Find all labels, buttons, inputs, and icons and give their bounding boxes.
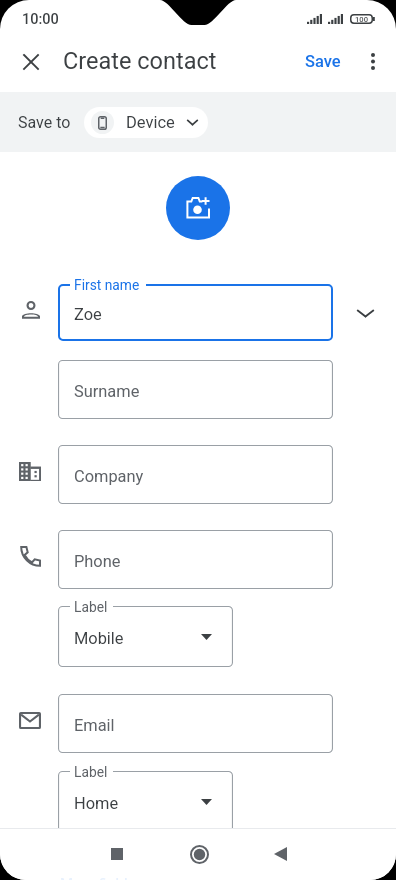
staticText: 100 bbox=[355, 15, 368, 24]
staticText: Mobile bbox=[74, 629, 124, 648]
staticText: Create contact bbox=[63, 47, 217, 75]
button[interactable]: Add photo bbox=[166, 176, 230, 240]
staticText: Email bbox=[74, 716, 115, 735]
button[interactable]: First name bbox=[58, 284, 333, 341]
staticText: Label bbox=[74, 764, 108, 780]
button[interactable]: Device bbox=[84, 107, 208, 138]
staticText: Save to bbox=[18, 113, 71, 132]
staticText: First name bbox=[74, 277, 140, 293]
button[interactable]: Surname bbox=[58, 360, 333, 419]
staticText: Zoe bbox=[74, 305, 102, 324]
button[interactable]: Back bbox=[256, 830, 304, 878]
staticText: Home bbox=[74, 794, 119, 813]
button[interactable]: Expand name fields bbox=[345, 293, 385, 333]
staticText: Surname bbox=[74, 382, 140, 401]
button[interactable]: Email bbox=[58, 694, 333, 753]
staticText: Phone bbox=[74, 552, 121, 571]
staticText: 10:00 bbox=[22, 11, 59, 28]
button[interactable]: More options bbox=[352, 41, 393, 82]
button[interactable]: Company bbox=[58, 445, 333, 504]
staticText: Label bbox=[74, 599, 108, 615]
button[interactable]: Label bbox=[58, 606, 233, 667]
button[interactable]: Label bbox=[58, 771, 233, 832]
staticText: More fields bbox=[60, 875, 136, 880]
button[interactable]: Home bbox=[175, 830, 223, 878]
staticText: Device bbox=[126, 113, 175, 132]
staticText: Save bbox=[305, 52, 341, 71]
button[interactable]: Phone bbox=[58, 530, 333, 589]
button[interactable]: Close bbox=[10, 41, 51, 82]
staticText: Company bbox=[74, 467, 144, 486]
button[interactable]: Save bbox=[297, 44, 349, 79]
button[interactable]: Recents bbox=[93, 830, 141, 878]
